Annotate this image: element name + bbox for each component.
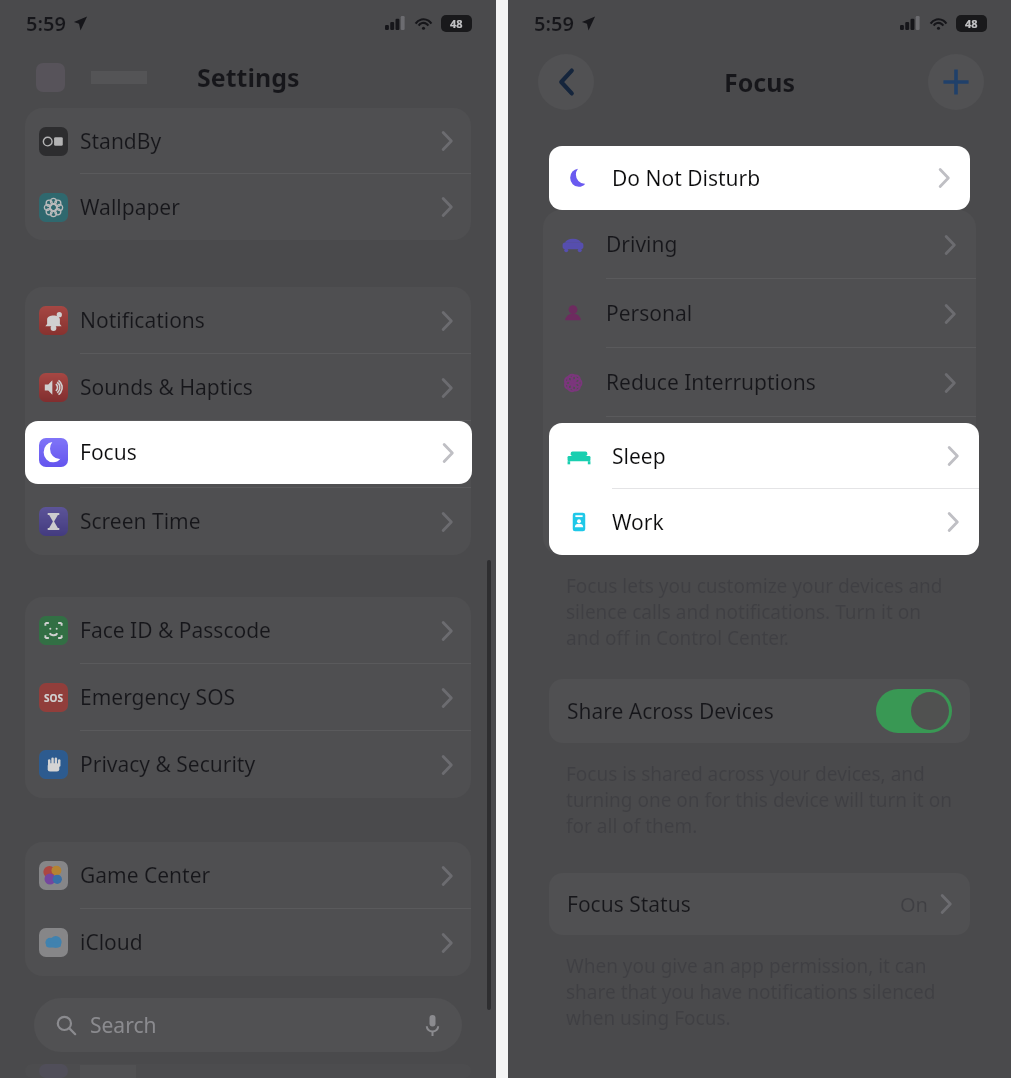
staticText: Face ID & Passcode xyxy=(80,616,441,645)
button[interactable]: Work xyxy=(549,489,979,555)
staticText: Emergency SOS xyxy=(80,683,441,712)
staticText: Work xyxy=(606,506,944,535)
button[interactable]: Share Across Devices xyxy=(549,679,970,743)
button[interactable]: Focus Status xyxy=(549,873,970,935)
staticText: Focus xyxy=(80,438,442,467)
staticText: iCloud xyxy=(80,928,441,957)
button[interactable]: Back xyxy=(538,54,594,110)
staticText: Privacy & Security xyxy=(80,750,441,779)
staticText: 48 xyxy=(965,16,978,31)
button[interactable]: Reduce Interruptions xyxy=(543,348,976,417)
staticText: On xyxy=(900,891,928,918)
button[interactable]: Add Focus xyxy=(928,54,984,110)
button[interactable]: Focus xyxy=(25,421,471,488)
staticText: Settings xyxy=(197,60,300,94)
button[interactable]: Sleep xyxy=(543,417,976,486)
button[interactable]: Game Center xyxy=(25,842,471,909)
staticText: SOS xyxy=(44,691,63,705)
staticText: Sounds & Haptics xyxy=(80,373,441,402)
staticText: Screen Time xyxy=(80,507,441,536)
staticText: Do Not Disturb xyxy=(612,164,938,193)
button[interactable]: Focus xyxy=(25,421,472,484)
staticText: Sleep xyxy=(612,442,947,471)
staticText: 5:59 xyxy=(534,10,574,37)
staticText: Sleep xyxy=(606,437,944,466)
button[interactable]: StandBy xyxy=(25,108,471,174)
staticText: Share Across Devices xyxy=(567,697,876,726)
staticText: Focus xyxy=(80,440,441,469)
button[interactable]: Notifications xyxy=(25,287,471,354)
staticText: 5:59 xyxy=(26,10,66,37)
button[interactable]: Privacy & Security xyxy=(25,731,471,798)
staticText: Driving xyxy=(606,230,944,259)
staticText: Search xyxy=(90,1011,425,1040)
button[interactable]: Search xyxy=(34,998,462,1052)
staticText: Focus xyxy=(724,65,796,99)
staticText: Focus Status xyxy=(567,890,900,919)
staticText: Game Center xyxy=(80,861,441,890)
staticText: 48 xyxy=(450,16,463,31)
button[interactable]: Personal xyxy=(543,279,976,348)
button[interactable]: iCloud xyxy=(25,909,471,976)
button[interactable]: Screen Time xyxy=(25,488,471,555)
button[interactable]: Wallpaper xyxy=(25,174,471,240)
button[interactable]: Driving xyxy=(543,210,976,279)
staticText: Notifications xyxy=(80,306,441,335)
button[interactable]: Sleep xyxy=(549,423,979,489)
staticText: Personal xyxy=(606,299,944,328)
staticText: StandBy xyxy=(80,127,441,156)
button[interactable]: Do Not Disturb xyxy=(549,146,970,210)
button[interactable]: SOS xyxy=(25,664,471,731)
staticText: Reduce Interruptions xyxy=(606,368,944,397)
button[interactable]: Sounds & Haptics xyxy=(25,354,471,421)
staticText: Work xyxy=(612,508,947,537)
button[interactable]: Work xyxy=(543,486,976,555)
button[interactable]: Face ID & Passcode xyxy=(25,597,471,664)
staticText: Wallpaper xyxy=(80,193,441,222)
